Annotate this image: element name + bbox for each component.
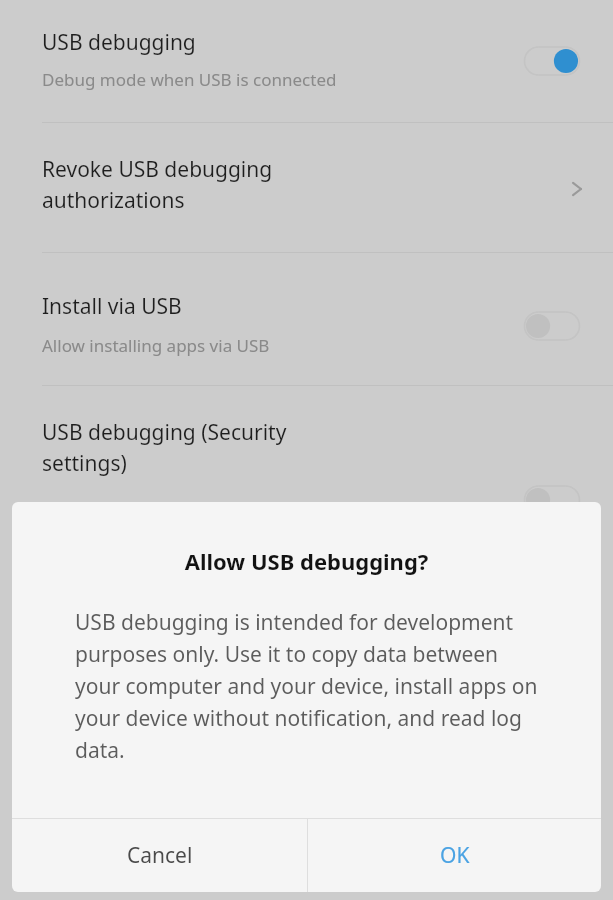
staticText: USB debugging is intended for developmen… xyxy=(75,608,545,764)
staticText: Allow installing apps via USB xyxy=(42,334,270,357)
staticText: Cancel xyxy=(127,841,193,870)
button[interactable]: USB debugging (Security settings) xyxy=(0,385,613,515)
button[interactable]: USB debugging xyxy=(0,0,613,122)
staticText: OK xyxy=(440,841,470,870)
button[interactable]: Install via USB xyxy=(0,252,613,385)
button[interactable]: Install via USB toggle xyxy=(524,308,580,344)
staticText: Debug mode when USB is connected xyxy=(42,68,337,91)
staticText: Allow USB debugging? xyxy=(12,546,601,576)
staticText: USB debugging (Security settings) xyxy=(42,418,287,477)
button[interactable]: OK xyxy=(308,819,601,892)
staticText: USB debugging xyxy=(42,28,196,57)
staticText: Install via USB xyxy=(42,292,182,321)
staticText: Revoke USB debugging authorizations xyxy=(42,155,273,214)
button[interactable]: Revoke USB debugging authorizations xyxy=(0,122,613,252)
button[interactable]: USB debugging toggle xyxy=(524,43,580,79)
button[interactable]: Cancel xyxy=(12,819,307,892)
